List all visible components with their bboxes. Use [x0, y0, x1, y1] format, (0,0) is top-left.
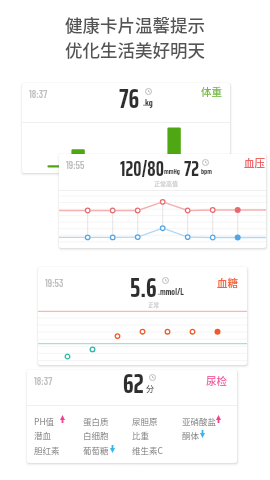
- staticText: 维生素C: [132, 444, 163, 456]
- button[interactable]: 血糖 5.6 mmol/L 健康卡片: [38, 267, 247, 365]
- staticText: 比重: [132, 429, 150, 441]
- staticText: .mmol/L: [158, 286, 184, 296]
- staticText: 尿检: [206, 373, 227, 388]
- staticText: 血压: [244, 155, 265, 170]
- staticText: 葡萄糖: [83, 444, 109, 456]
- staticText: 白细胞: [83, 429, 109, 441]
- staticText: 18:37: [34, 374, 53, 387]
- staticText: 亚硝酸盐: [182, 415, 217, 427]
- staticText: 76: [119, 83, 140, 119]
- staticText: 正常高值: [154, 179, 179, 188]
- staticText: 19:55: [66, 158, 85, 171]
- staticText: 优化生活美好明天: [65, 37, 205, 62]
- staticText: 5.6: [130, 267, 157, 308]
- button[interactable]: 尿检 62 分 健康卡片: [27, 370, 237, 463]
- button[interactable]: 血压 120/80 mmHg 健康卡片: [59, 154, 266, 248]
- button[interactable]: 体重 76 kg 健康卡片: [22, 83, 230, 173]
- staticText: .kg: [143, 97, 153, 108]
- staticText: 胆红素: [34, 444, 60, 456]
- staticText: 19:53: [45, 276, 64, 289]
- staticText: bpm: [201, 167, 212, 175]
- staticText: mmHg: [164, 167, 180, 175]
- staticText: 72: [184, 154, 199, 185]
- staticText: 62: [123, 370, 144, 404]
- staticText: 蛋白质: [83, 415, 109, 427]
- staticText: 正常: [148, 301, 160, 309]
- staticText: 酮体: [182, 429, 200, 441]
- staticText: 血糖: [217, 275, 238, 290]
- staticText: 潜血: [34, 429, 52, 441]
- staticText: 18:37: [29, 87, 48, 100]
- staticText: PH值: [34, 415, 55, 427]
- staticText: 健康卡片温馨提示: [65, 12, 205, 37]
- staticText: 分: [146, 383, 154, 395]
- staticText: 体重: [201, 84, 222, 99]
- staticText: 尿胆原: [132, 415, 158, 427]
- staticText: 120/80: [120, 154, 164, 185]
